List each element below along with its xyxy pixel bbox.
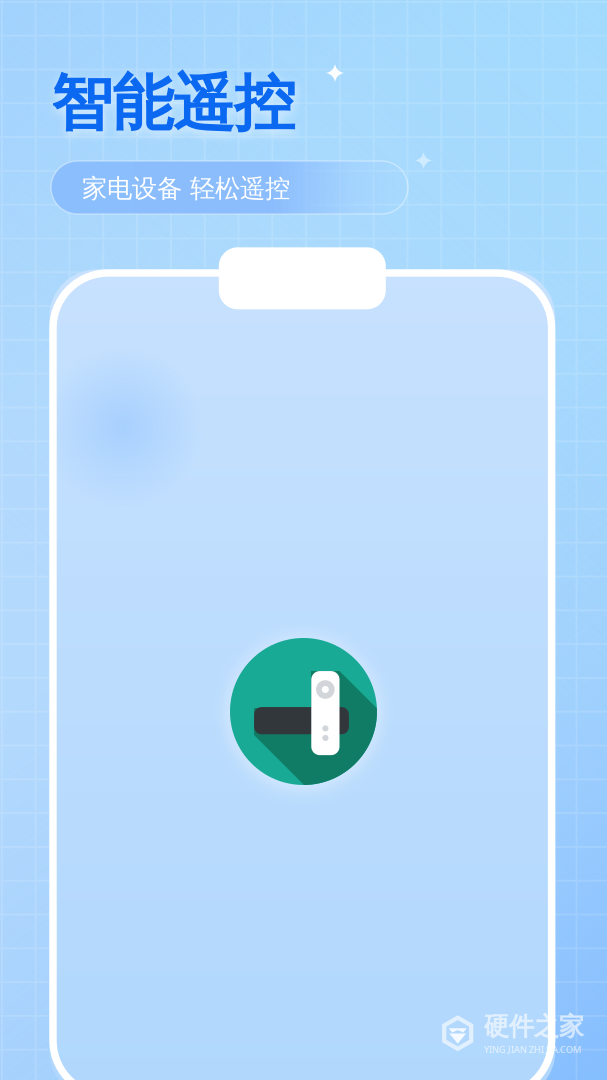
- staticText: YING JIAN ZHI JIA.COM: [484, 1043, 582, 1055]
- staticText: 硬件之家: [484, 1011, 584, 1042]
- button[interactable]: 智能遥控 App: [230, 638, 377, 785]
- staticText: 智能遥控: [51, 66, 295, 141]
- staticText: 家电设备 轻松遥控: [82, 173, 290, 204]
